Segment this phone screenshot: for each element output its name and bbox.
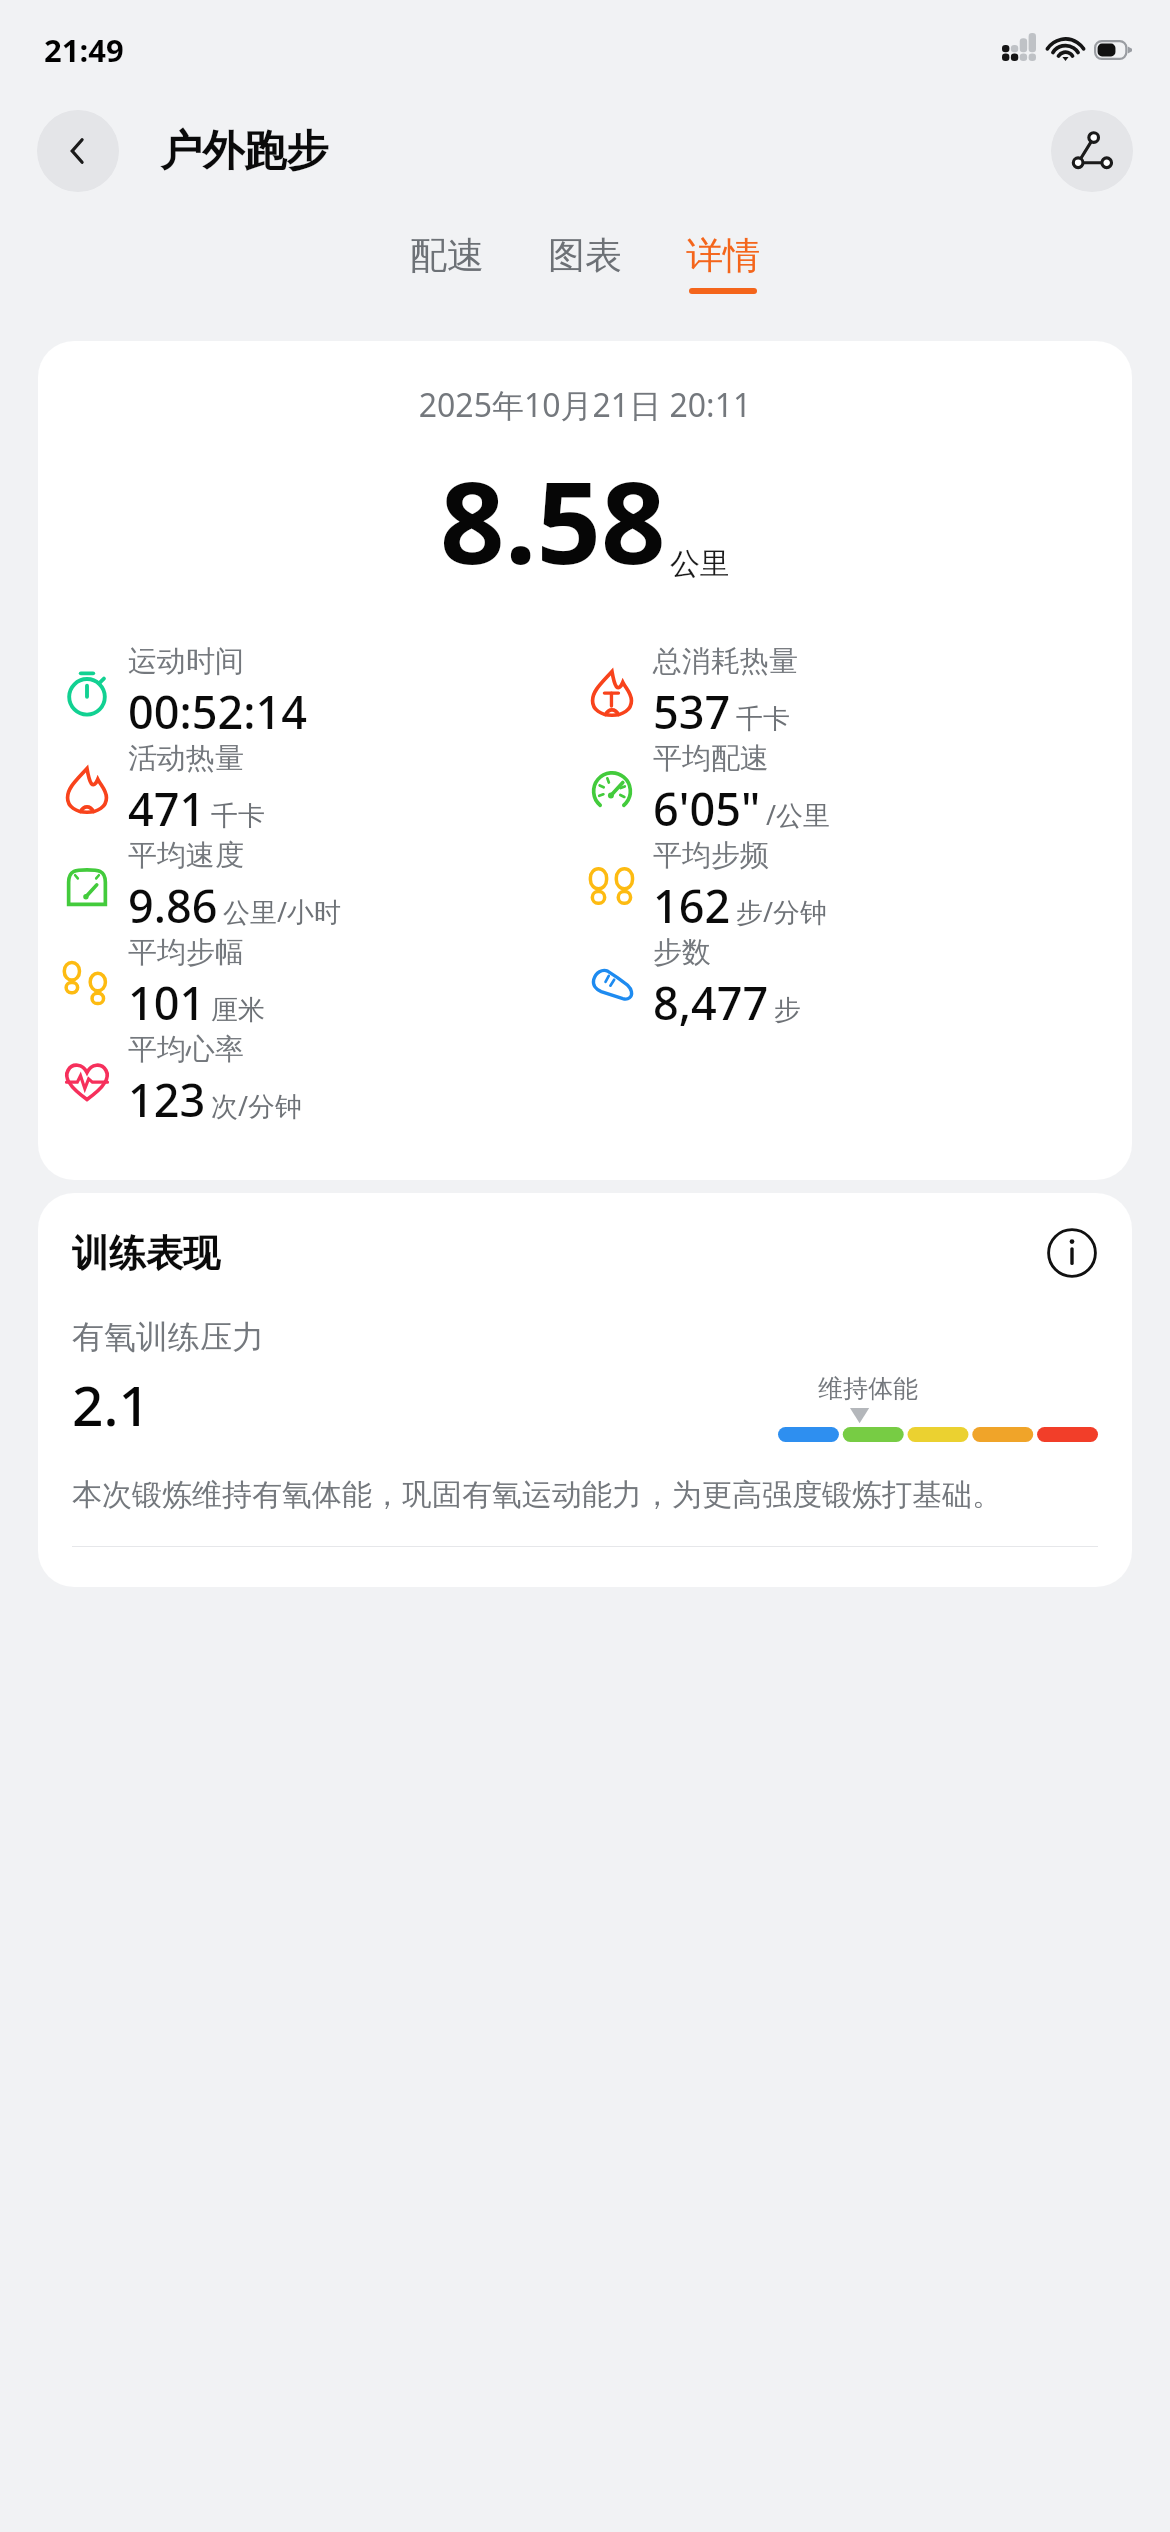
staticText: 101: [128, 972, 206, 1031]
staticText: 平均步幅: [128, 934, 244, 971]
staticText: /公里: [766, 796, 831, 833]
button[interactable]: 配速: [404, 228, 490, 298]
staticText: 总消耗热量: [653, 643, 798, 680]
staticText: 537: [653, 681, 731, 740]
button[interactable]: 平均步频: [585, 837, 828, 934]
staticText: 8.58: [440, 443, 666, 597]
staticText: 2.1: [72, 1367, 150, 1442]
button[interactable]: 平均步幅: [60, 934, 265, 1031]
button[interactable]: 平均配速: [585, 740, 831, 837]
staticText: 步/分钟: [736, 893, 828, 930]
button[interactable]: 图表: [542, 228, 628, 298]
staticText: 平均配速: [653, 740, 769, 777]
staticText: 6'05": [653, 778, 761, 837]
staticText: 配速: [410, 232, 484, 279]
staticText: 平均心率: [128, 1031, 244, 1068]
staticText: 千卡: [736, 702, 790, 736]
staticText: 活动热量: [128, 740, 244, 777]
button[interactable]: 总消耗热量: [585, 643, 798, 740]
staticText: 公里: [670, 545, 730, 583]
staticText: 厘米: [211, 993, 265, 1027]
button[interactable]: 详情: [680, 228, 766, 298]
button[interactable]: Info: [1046, 1227, 1098, 1279]
button[interactable]: Back: [37, 110, 119, 192]
staticText: 图表: [548, 232, 622, 279]
staticText: 运动时间: [128, 643, 244, 680]
staticText: 162: [653, 875, 731, 934]
staticText: 本次锻炼维持有氧体能，巩固有氧运动能力，为更高强度锻炼打基础。: [72, 1476, 1002, 1514]
button[interactable]: 平均心率: [60, 1031, 303, 1128]
staticText: 详情: [686, 232, 760, 279]
staticText: 471: [128, 778, 206, 837]
staticText: 平均速度: [128, 837, 244, 874]
staticText: 训练表现: [72, 1230, 220, 1277]
staticText: 步: [774, 993, 801, 1027]
staticText: 户外跑步: [160, 125, 328, 178]
staticText: 平均步频: [653, 837, 769, 874]
button[interactable]: 活动热量: [60, 740, 265, 837]
staticText: 公里/小时: [223, 893, 342, 930]
staticText: 步数: [653, 934, 711, 971]
staticText: 9.86: [128, 875, 218, 934]
staticText: 123: [128, 1069, 206, 1128]
staticText: 维持体能: [818, 1373, 918, 1404]
staticText: 8,477: [653, 972, 769, 1031]
staticText: 千卡: [211, 799, 265, 833]
button[interactable]: 运动时间: [60, 643, 307, 740]
staticText: 00:52:14: [128, 681, 307, 740]
staticText: 2025年10月21日 20:11: [38, 383, 1132, 427]
staticText: 有氧训练压力: [72, 1317, 264, 1357]
button[interactable]: 步数: [585, 934, 801, 1031]
button[interactable]: 平均速度: [60, 837, 342, 934]
staticText: 21:49: [44, 29, 124, 71]
button[interactable]: Share: [1051, 110, 1133, 192]
staticText: 次/分钟: [211, 1087, 303, 1124]
